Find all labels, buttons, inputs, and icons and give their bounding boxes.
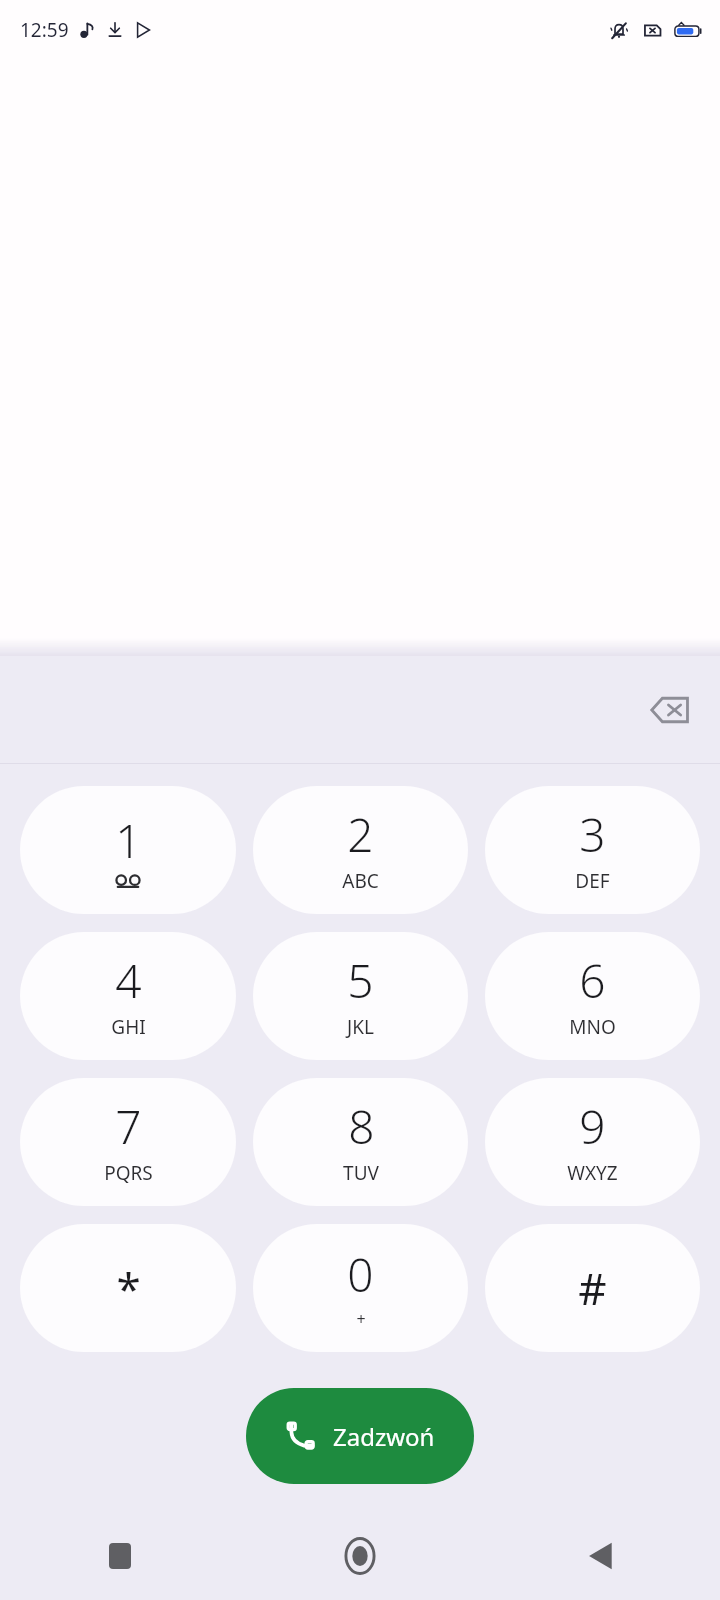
staticText: TUV: [343, 1160, 379, 1186]
staticText: 4: [115, 949, 142, 1012]
button[interactable]: *: [20, 1224, 236, 1352]
staticText: 1: [115, 809, 142, 872]
staticText: 5: [347, 949, 374, 1012]
button[interactable]: Home: [240, 1512, 480, 1600]
button[interactable]: 9: [485, 1078, 700, 1206]
button[interactable]: 7: [20, 1078, 236, 1206]
button[interactable]: 8: [253, 1078, 468, 1206]
button[interactable]: #: [485, 1224, 700, 1352]
button[interactable]: 6: [485, 932, 700, 1060]
staticText: 3: [579, 803, 606, 866]
staticText: MNO: [569, 1014, 616, 1040]
button[interactable]: 5: [253, 932, 468, 1060]
staticText: 2: [347, 803, 374, 866]
staticText: 8: [348, 1095, 375, 1158]
staticText: PQRS: [104, 1160, 153, 1186]
staticText: GHI: [111, 1014, 146, 1040]
staticText: 6: [579, 949, 606, 1012]
staticText: 7: [115, 1095, 142, 1158]
staticText: +: [356, 1308, 366, 1330]
button[interactable]: 3: [485, 786, 700, 914]
staticText: Zadzwoń: [333, 1420, 435, 1453]
button[interactable]: 2: [253, 786, 468, 914]
button[interactable]: Zadzwoń: [246, 1388, 474, 1484]
staticText: WXYZ: [567, 1160, 618, 1186]
staticText: 12:59: [20, 17, 69, 43]
button[interactable]: Recent apps: [0, 1512, 240, 1600]
staticText: 0: [347, 1243, 374, 1306]
button[interactable]: Back: [480, 1512, 720, 1600]
staticText: JKL: [347, 1014, 374, 1040]
staticText: #: [578, 1258, 607, 1318]
staticText: 9: [579, 1095, 606, 1158]
staticText: *: [116, 1258, 141, 1318]
button[interactable]: 0: [253, 1224, 468, 1352]
button[interactable]: Backspace: [642, 682, 698, 738]
staticText: DEF: [575, 868, 610, 894]
staticText: ABC: [342, 868, 379, 894]
button[interactable]: 1: [20, 786, 236, 914]
button[interactable]: 4: [20, 932, 236, 1060]
